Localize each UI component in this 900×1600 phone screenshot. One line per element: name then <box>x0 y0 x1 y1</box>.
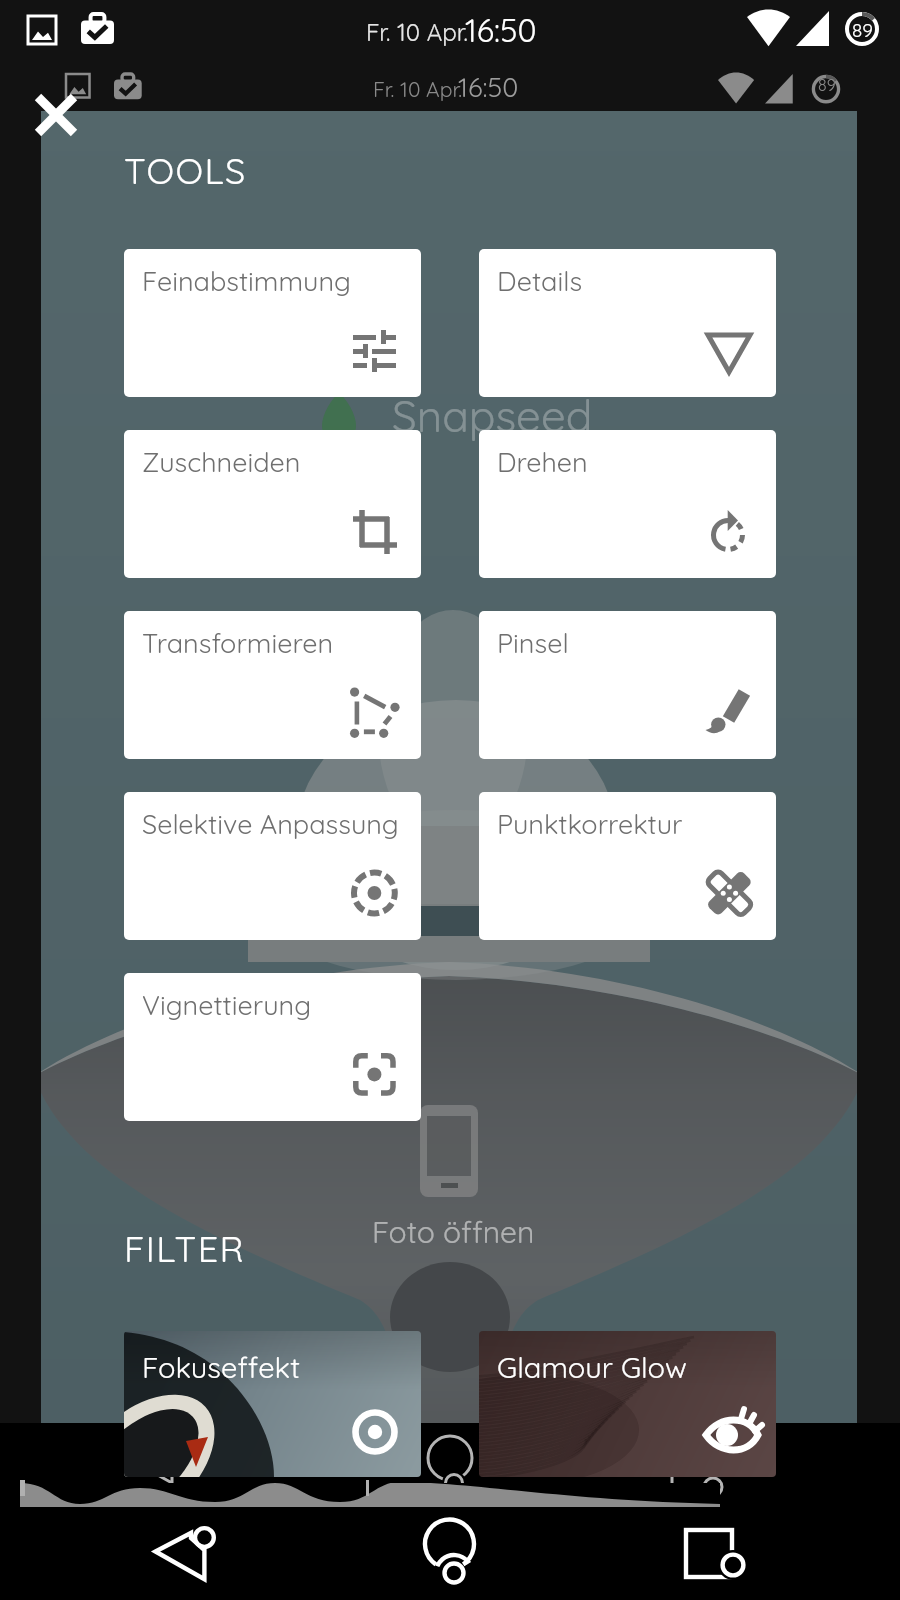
button[interactable]: Vignettierung <box>124 973 421 1121</box>
staticText: FILTER <box>124 1226 246 1271</box>
button[interactable]: Fokuseffekt <box>124 1331 421 1477</box>
staticText: 16:50 <box>465 10 537 50</box>
staticText: TOOLS <box>124 148 247 193</box>
staticText: Zuschneiden <box>142 445 301 479</box>
button[interactable]: Feinabstimmung <box>124 249 421 397</box>
staticText: Feinabstimmung <box>142 264 351 298</box>
staticText: Glamour Glow <box>497 1349 687 1385</box>
staticText: 16:50 <box>458 70 519 104</box>
button[interactable]: Back <box>110 1507 270 1600</box>
button[interactable]: Close <box>28 87 84 143</box>
button[interactable]: Selektive Anpassung <box>124 792 421 940</box>
button[interactable]: Punktkorrektur <box>479 792 776 940</box>
staticText: Snapseed <box>392 388 593 443</box>
staticText: Selektive Anpassung <box>142 807 399 841</box>
button[interactable]: Zuschneiden <box>124 430 421 578</box>
staticText: Drehen <box>497 445 588 479</box>
button[interactable]: Recent apps <box>640 1507 800 1600</box>
button[interactable]: Glamour Glow <box>479 1331 776 1477</box>
staticText: Details <box>497 264 583 298</box>
staticText: Fokuseffekt <box>142 1349 300 1385</box>
button[interactable]: Pinsel <box>479 611 776 759</box>
staticText: Fr. 10 Apr. <box>373 76 463 102</box>
staticText: Foto öffnen <box>372 1213 535 1251</box>
staticText: Transformieren <box>142 626 334 660</box>
staticText: 89 <box>852 18 873 42</box>
button[interactable]: Home <box>370 1507 530 1600</box>
staticText: Vignettierung <box>142 988 311 1022</box>
button[interactable]: Drehen <box>479 430 776 578</box>
button[interactable]: Details <box>479 249 776 397</box>
staticText: Pinsel <box>497 626 569 660</box>
button[interactable]: Transformieren <box>124 611 421 759</box>
staticText: Fr. 10 Apr. <box>366 17 468 47</box>
staticText: Punktkorrektur <box>497 807 683 841</box>
staticText: 89 <box>818 75 836 95</box>
